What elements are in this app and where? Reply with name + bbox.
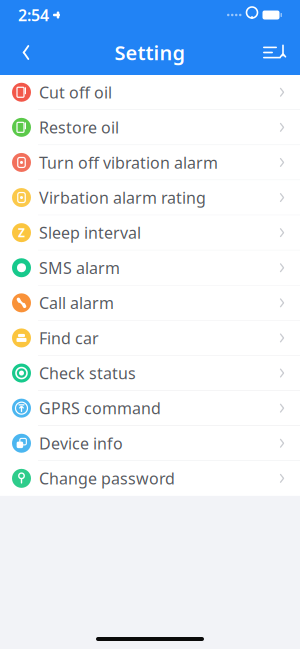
button[interactable]: Find car: [0, 321, 300, 356]
button[interactable]: SMS alarm: [0, 250, 300, 286]
staticText: Restore oil: [39, 117, 119, 138]
staticText: Check status: [39, 362, 136, 384]
button[interactable]: Virbation alarm rating: [0, 180, 300, 215]
button[interactable]: Change password: [0, 461, 300, 496]
button[interactable]: Cut off oil: [0, 75, 300, 110]
staticText: Z: [18, 225, 25, 241]
staticText: SMS alarm: [39, 257, 120, 278]
staticText: Sleep interval: [39, 222, 141, 243]
button[interactable]: GPRS command: [0, 391, 300, 426]
button[interactable]: Restore oil: [0, 110, 300, 145]
staticText: Device info: [39, 433, 123, 454]
button[interactable]: Z: [0, 215, 300, 250]
button[interactable]: Check status: [0, 356, 300, 391]
staticText: Call alarm: [39, 292, 114, 313]
staticText: Setting: [114, 39, 185, 66]
button[interactable]: Call alarm: [0, 286, 300, 321]
staticText: Cut off oil: [39, 82, 112, 103]
staticText: Find car: [39, 327, 99, 348]
button[interactable]: Turn off vibration alarm: [0, 145, 300, 180]
staticText: Turn off vibration alarm: [39, 152, 218, 173]
staticText: Virbation alarm rating: [39, 187, 206, 208]
staticText: GPRS command: [39, 397, 161, 419]
button[interactable]: Back: [4, 30, 48, 75]
staticText: Change password: [39, 468, 175, 489]
staticText: 2:54: [18, 4, 49, 26]
button[interactable]: Sort: [252, 30, 296, 75]
button[interactable]: Device info: [0, 426, 300, 461]
